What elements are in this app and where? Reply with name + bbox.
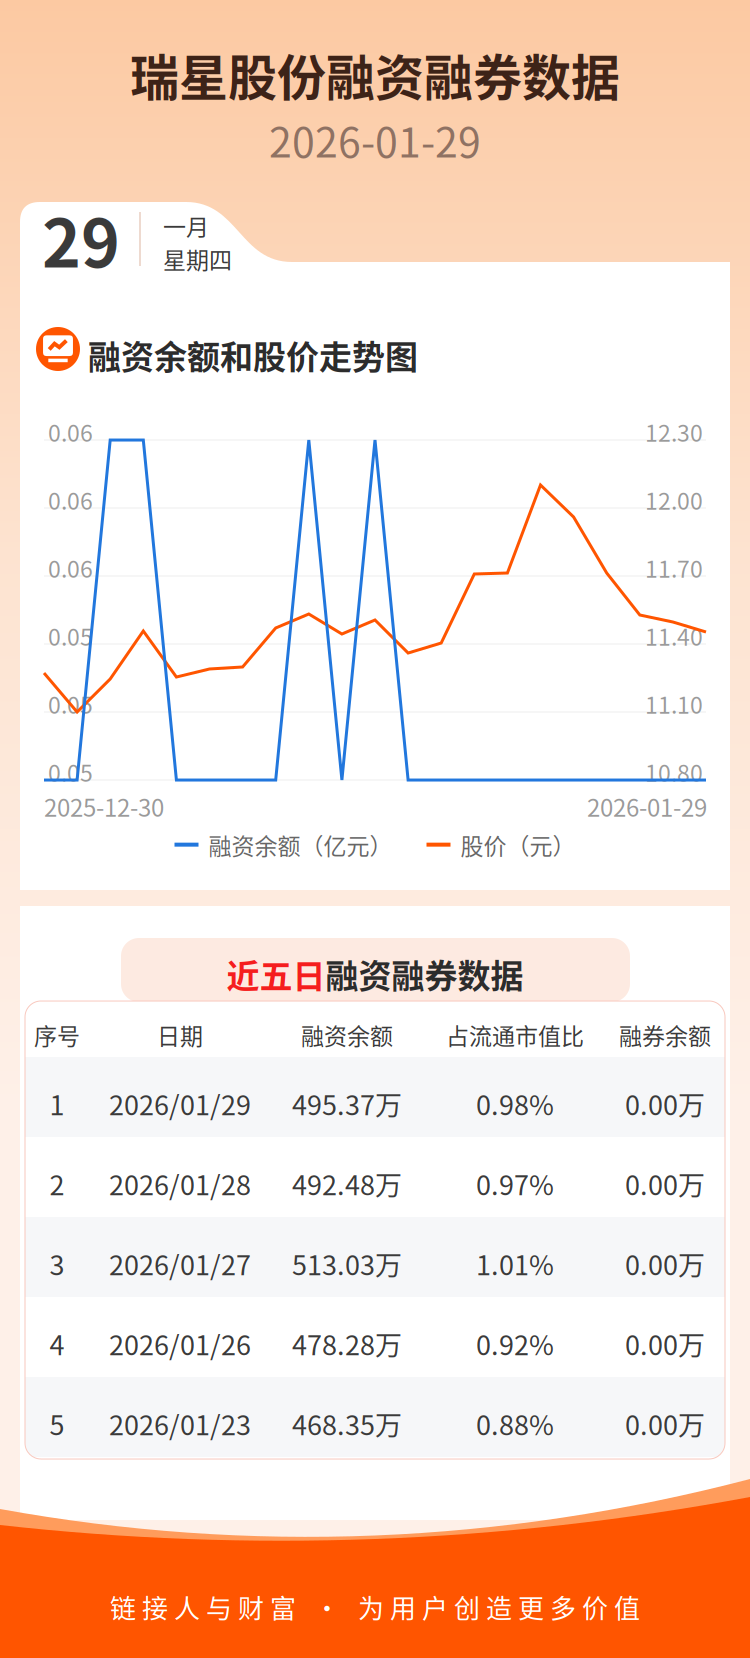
- staticText: 占流通市值比: [446, 1018, 584, 1051]
- staticText: 0.00万: [625, 1324, 705, 1363]
- staticText: 0.05: [48, 619, 93, 652]
- staticText: 3: [49, 1244, 64, 1283]
- staticText: 0.97%: [476, 1164, 554, 1203]
- staticText: 11.40: [645, 619, 703, 652]
- staticText: 2026-01-29: [587, 789, 707, 824]
- staticText: 0.06: [48, 551, 93, 584]
- staticText: 2026/01/28: [109, 1164, 251, 1203]
- staticText: 融资余额和股价走势图: [88, 331, 418, 379]
- staticText: 492.48万: [292, 1164, 402, 1203]
- staticText: 0.06: [48, 483, 93, 516]
- staticText: 股价（元）: [450, 828, 575, 861]
- staticText: 2026/01/29: [109, 1084, 251, 1123]
- staticText: 0.00万: [625, 1164, 705, 1203]
- staticText: 0.92%: [476, 1324, 554, 1363]
- staticText: 11.70: [645, 551, 703, 584]
- staticText: 0.00万: [625, 1244, 705, 1283]
- staticText: 0.88%: [476, 1404, 554, 1443]
- staticText: 495.37万: [292, 1084, 402, 1123]
- staticText: 融资融券数据: [325, 950, 523, 998]
- staticText: 1: [49, 1084, 64, 1123]
- staticText: 5: [49, 1404, 64, 1443]
- staticText: 融资余额: [301, 1018, 393, 1051]
- staticText: 0.00万: [625, 1084, 705, 1123]
- staticText: 478.28万: [292, 1324, 402, 1363]
- staticText: 0.06: [48, 415, 93, 448]
- staticText: 日期: [157, 1018, 203, 1051]
- staticText: 11.10: [645, 687, 703, 720]
- staticText: 一月: [163, 209, 209, 242]
- staticText: 1.01%: [476, 1244, 554, 1283]
- staticText: 12.30: [645, 415, 703, 448]
- staticText: 10.80: [645, 755, 703, 788]
- staticText: 4: [49, 1324, 64, 1363]
- staticText: 2025-12-30: [44, 789, 164, 824]
- staticText: 融资余额（亿元）: [198, 828, 392, 861]
- staticText: 2026-01-29: [269, 110, 481, 169]
- staticText: 0.00万: [625, 1404, 705, 1443]
- staticText: 468.35万: [292, 1404, 402, 1443]
- staticText: 0.05: [48, 755, 93, 788]
- staticText: 序号: [34, 1018, 80, 1051]
- staticText: 星期四: [163, 242, 232, 275]
- staticText: 0.98%: [476, 1084, 554, 1123]
- staticText: 0.05: [48, 687, 93, 720]
- staticText: 近五日: [226, 950, 325, 998]
- staticText: 2: [49, 1164, 64, 1203]
- staticText: 513.03万: [292, 1244, 402, 1283]
- staticText: 2026/01/23: [109, 1404, 251, 1443]
- staticText: 链接人与财富 · 为用户创造更多价值: [110, 1588, 640, 1626]
- staticText: 29: [42, 191, 120, 287]
- staticText: 融券余额: [619, 1018, 711, 1051]
- staticText: 2026/01/26: [109, 1324, 251, 1363]
- staticText: 2026/01/27: [109, 1244, 251, 1283]
- staticText: 12.00: [645, 483, 703, 516]
- staticText: 瑞星股份融资融券数据: [130, 39, 620, 110]
